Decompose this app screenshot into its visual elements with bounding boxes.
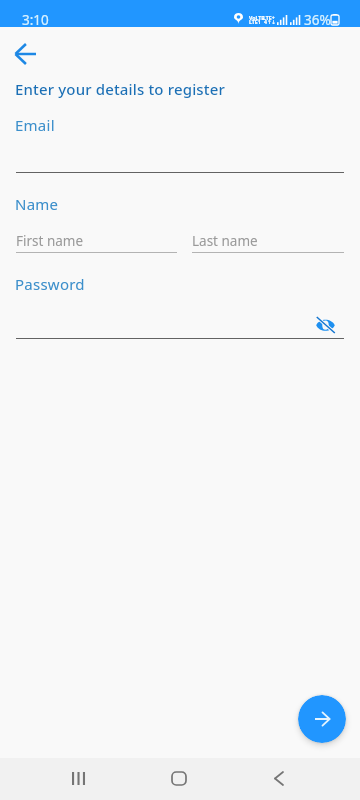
staticText: Last name	[192, 232, 258, 250]
button[interactable]: Toggle password visibility	[311, 311, 339, 339]
button[interactable]: Recents	[58, 757, 98, 799]
staticText: Password	[15, 274, 85, 294]
button[interactable]: Next	[298, 695, 346, 743]
staticText: LTE+	[263, 14, 275, 21]
button[interactable]: Home	[159, 757, 199, 799]
staticText: 4↑↓	[264, 18, 276, 25]
staticText: Email	[15, 115, 55, 135]
staticText: Enter your details to register	[15, 79, 225, 99]
staticText: LTE1	[249, 18, 261, 25]
staticText: 36%	[304, 11, 331, 29]
staticText: 3:10	[22, 11, 49, 29]
button[interactable]: Back	[259, 757, 299, 799]
button[interactable]: Back	[5, 34, 45, 74]
staticText: VoLTE	[249, 14, 265, 21]
staticText: Name	[15, 194, 59, 214]
staticText: First name	[16, 232, 84, 250]
